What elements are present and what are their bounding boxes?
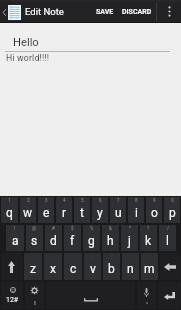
staticText: ( bbox=[92, 254, 94, 259]
button[interactable]: 5 bbox=[74, 197, 90, 223]
button[interactable]: 3 bbox=[38, 197, 54, 223]
staticText: ) bbox=[111, 254, 113, 259]
button[interactable]: ( bbox=[84, 253, 101, 280]
button[interactable]: ' bbox=[64, 253, 82, 280]
button[interactable]: Voice input bbox=[137, 282, 156, 309]
staticText: p bbox=[169, 206, 176, 220]
staticText: z bbox=[30, 262, 36, 276]
staticText: 2 bbox=[27, 198, 30, 203]
staticText: * bbox=[129, 226, 131, 231]
button[interactable]: ! bbox=[6, 225, 24, 251]
staticText: n bbox=[127, 262, 134, 276]
staticText: j bbox=[128, 234, 131, 248]
button[interactable]: 6 bbox=[92, 197, 108, 223]
staticText: 9 bbox=[153, 198, 156, 203]
staticText: i bbox=[135, 206, 138, 220]
button[interactable]: ? bbox=[140, 225, 157, 251]
staticText: v bbox=[90, 262, 96, 276]
button[interactable]: _ bbox=[24, 253, 42, 280]
button[interactable]: $ bbox=[64, 225, 81, 251]
button[interactable]: : bbox=[141, 253, 158, 280]
button[interactable]: / bbox=[159, 225, 176, 251]
button[interactable]: & bbox=[102, 225, 119, 251]
staticText: q bbox=[6, 206, 13, 220]
button[interactable]: Shift bbox=[1, 253, 22, 280]
staticText: d bbox=[50, 234, 57, 248]
staticText: h bbox=[107, 234, 114, 248]
staticText: SAVE bbox=[96, 8, 114, 16]
staticText: 1 bbox=[8, 198, 11, 203]
staticText: s bbox=[31, 234, 38, 248]
button[interactable]: Navigate up bbox=[0, 0, 22, 23]
staticText: b bbox=[108, 262, 115, 276]
staticText: o bbox=[151, 206, 158, 220]
staticText: % bbox=[90, 226, 94, 231]
button[interactable]: 7 bbox=[110, 197, 126, 223]
button[interactable]: 8 bbox=[128, 197, 144, 223]
staticText: 6 bbox=[99, 198, 102, 203]
staticText: a bbox=[12, 234, 19, 248]
button[interactable]: Symbols bbox=[1, 282, 23, 309]
staticText: 0 bbox=[171, 198, 174, 203]
button[interactable]: Enter bbox=[158, 282, 180, 309]
staticText: c bbox=[70, 262, 77, 276]
button[interactable]: Space bbox=[46, 282, 135, 309]
button[interactable]: More options bbox=[157, 0, 181, 23]
staticText: & bbox=[109, 226, 112, 231]
staticText: 5 bbox=[81, 198, 84, 203]
button[interactable]: SAVE bbox=[92, 0, 118, 23]
button[interactable]: DISCARD bbox=[118, 0, 156, 23]
staticText: u bbox=[115, 206, 122, 220]
staticText: ' bbox=[73, 254, 74, 259]
staticText: ? bbox=[147, 226, 150, 231]
staticText: g bbox=[88, 234, 95, 248]
staticText: # bbox=[52, 226, 55, 231]
staticText: $ bbox=[71, 226, 74, 231]
staticText: ! bbox=[14, 226, 16, 231]
button[interactable]: 0 bbox=[164, 197, 180, 223]
staticText: Hi world!!!! bbox=[6, 53, 50, 63]
staticText: / bbox=[167, 226, 169, 231]
staticText: w bbox=[23, 206, 33, 220]
staticText: k bbox=[145, 234, 152, 248]
staticText: 12# bbox=[6, 296, 19, 304]
button[interactable]: ) bbox=[103, 253, 120, 280]
staticText: Hello bbox=[13, 36, 39, 49]
staticText: 8 bbox=[135, 198, 138, 203]
staticText: m bbox=[144, 262, 155, 276]
staticText: 3 bbox=[45, 198, 48, 203]
button[interactable]: 1 bbox=[1, 197, 18, 223]
staticText: t bbox=[80, 206, 84, 220]
staticText: DISCARD bbox=[122, 8, 152, 16]
staticText: y bbox=[97, 206, 103, 220]
button[interactable]: Backspace bbox=[160, 253, 180, 280]
staticText: l bbox=[166, 234, 169, 248]
staticText: f bbox=[70, 234, 75, 248]
button[interactable]: 4 bbox=[56, 197, 72, 223]
button[interactable]: Settings bbox=[25, 282, 44, 309]
staticText: @ bbox=[32, 226, 37, 231]
staticText: _ bbox=[32, 254, 35, 259]
button[interactable]: @ bbox=[26, 225, 43, 251]
staticText: Edit Note bbox=[25, 6, 64, 17]
staticText: r bbox=[62, 206, 67, 220]
staticText: e bbox=[43, 206, 50, 220]
button[interactable]: * bbox=[121, 225, 138, 251]
staticText: " bbox=[52, 254, 54, 259]
staticText: 7 bbox=[117, 198, 120, 203]
button[interactable]: # bbox=[45, 225, 62, 251]
button[interactable]: 2 bbox=[20, 197, 36, 223]
staticText: 4 bbox=[63, 198, 66, 203]
button[interactable]: % bbox=[83, 225, 100, 251]
staticText: x bbox=[50, 262, 56, 276]
button[interactable]: - bbox=[122, 253, 139, 280]
button[interactable]: 9 bbox=[146, 197, 162, 223]
button[interactable]: " bbox=[44, 253, 62, 280]
